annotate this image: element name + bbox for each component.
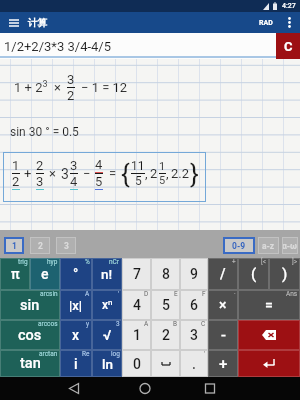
button[interactable] [44, 377, 104, 400]
button[interactable]: 1/2+2/3*3 3/4-4/5 [0, 33, 276, 59]
staticText: i [74, 356, 78, 372]
staticText: sin 30 ° = 0.5 [10, 125, 79, 139]
button[interactable]: RAD [259, 12, 273, 33]
staticText: √ [103, 327, 112, 343]
staticText: α-ω [282, 241, 298, 251]
staticText: 3 [64, 241, 69, 251]
staticText: ' [118, 290, 120, 298]
button[interactable]: [< [238, 258, 269, 290]
staticText: cos [18, 327, 42, 344]
button[interactable]: 8 [151, 258, 180, 290]
staticText: Ans [286, 290, 298, 298]
button[interactable] [282, 12, 296, 33]
staticText: 3 [116, 320, 120, 328]
staticText: 3 [61, 166, 69, 182]
staticText: 2 [38, 241, 43, 251]
staticText: 0 [133, 356, 141, 372]
staticText: 1 + 23 [14, 79, 48, 96]
button[interactable]: B [151, 320, 180, 350]
button[interactable]: - [208, 320, 238, 350]
staticText: |x| [69, 298, 83, 313]
button[interactable]: α-ω [282, 237, 298, 254]
button[interactable]: 9 [180, 258, 208, 290]
staticText: tan [20, 355, 41, 372]
button[interactable]: nCr [92, 258, 122, 290]
button[interactable]: E [151, 290, 180, 320]
button[interactable]: 1 [4, 237, 24, 254]
button[interactable]: trig [0, 258, 30, 290]
staticText: 6 [190, 297, 198, 313]
button[interactable] [115, 377, 175, 400]
staticText: trig [18, 258, 28, 266]
staticText: × [219, 297, 227, 313]
button[interactable]: 2 [30, 237, 50, 254]
button[interactable]: C [180, 320, 208, 350]
staticText: 9 [190, 266, 198, 282]
button[interactable]: arctan [0, 350, 60, 377]
button[interactable]: ]> [269, 258, 300, 290]
button[interactable]: Re [60, 350, 92, 377]
button[interactable]: ' [92, 290, 122, 320]
staticText: − 1 = 12 [81, 80, 128, 95]
button[interactable]: 0-9 [223, 237, 255, 254]
staticText: ]> [292, 258, 298, 266]
staticText: · [234, 290, 236, 298]
staticText: 4:27 [282, 2, 296, 10]
button[interactable]: A [60, 290, 92, 320]
staticText: C [201, 320, 206, 328]
staticText: 1 [12, 241, 17, 251]
staticText: arcsin [40, 290, 58, 298]
button[interactable] [0, 12, 28, 33]
button[interactable]: A [122, 320, 151, 350]
button[interactable]: arcsin [0, 290, 60, 320]
staticText: . [192, 356, 196, 372]
staticText: 3 [190, 327, 198, 343]
staticText: + [24, 166, 32, 181]
button[interactable]: ' [180, 350, 208, 377]
staticText: B [173, 320, 178, 328]
staticText: y [86, 320, 90, 328]
staticText: , [166, 166, 169, 181]
staticText: ' [204, 350, 206, 358]
button[interactable]: + [208, 258, 238, 290]
button[interactable]: arccos [0, 320, 60, 350]
button[interactable]: % [60, 258, 92, 290]
button[interactable]: 7 [122, 258, 151, 290]
staticText: Re [82, 350, 90, 358]
button[interactable]: C [276, 33, 300, 59]
button[interactable]: y [60, 320, 92, 350]
staticText: 2 [12, 174, 20, 189]
staticText: 8 [162, 266, 170, 282]
staticText: × [49, 166, 56, 181]
button[interactable] [238, 320, 300, 350]
staticText: a-z [262, 241, 275, 251]
staticText: A [85, 290, 90, 298]
button[interactable]: D [122, 290, 151, 320]
staticText: , [145, 166, 148, 181]
button[interactable]: Ans [238, 290, 300, 320]
button[interactable]: + [208, 350, 238, 377]
staticText: − [83, 166, 91, 181]
staticText: π [11, 266, 20, 282]
button[interactable]: 3 [92, 320, 122, 350]
button[interactable]: log [92, 350, 122, 377]
staticText: D [144, 290, 149, 298]
button[interactable]: 0 [122, 350, 151, 377]
staticText: ln [102, 356, 113, 372]
staticText: C [284, 39, 293, 54]
button[interactable] [238, 350, 300, 377]
staticText: 1/2+2/3*3 3/4-4/5 [4, 39, 112, 54]
staticText: 2 [36, 158, 44, 173]
staticText: arctan [39, 350, 58, 358]
button[interactable]: a-z [258, 237, 279, 254]
button[interactable]: · [208, 290, 238, 320]
staticText: 5 [95, 174, 103, 189]
button[interactable] [180, 377, 240, 400]
button[interactable]: hyp [30, 258, 60, 290]
staticText: hyp [47, 258, 58, 266]
button[interactable]: F [180, 290, 208, 320]
button[interactable] [151, 350, 180, 377]
staticText: 4 [133, 297, 141, 313]
button[interactable]: 3 [56, 237, 76, 254]
staticText: ) [282, 265, 288, 283]
